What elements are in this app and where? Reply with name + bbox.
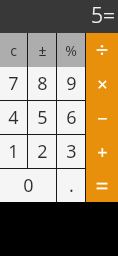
button[interactable]: 7 <box>0 67 27 100</box>
staticText: ± <box>38 41 47 60</box>
staticText: c <box>10 41 17 60</box>
button[interactable]: 0 <box>0 169 56 202</box>
button[interactable]: % <box>57 33 85 67</box>
staticText: × <box>97 72 108 97</box>
button[interactable]: Divide <box>86 33 118 67</box>
staticText: 3 <box>66 139 77 164</box>
button[interactable]: Multiply <box>86 67 118 101</box>
staticText: 9 <box>66 71 77 96</box>
staticText: 4 <box>8 105 19 130</box>
button[interactable]: 3 <box>57 135 85 168</box>
staticText: 5= <box>91 1 115 30</box>
button[interactable]: Subtract <box>86 101 118 135</box>
staticText: 5 <box>37 105 48 130</box>
button[interactable]: 5 <box>28 101 56 134</box>
staticText: − <box>97 106 108 131</box>
button[interactable]: c <box>0 33 27 67</box>
staticText: 2 <box>37 139 48 164</box>
staticText: 6 <box>66 105 77 130</box>
staticText: 8 <box>37 71 48 96</box>
button[interactable]: . <box>57 169 85 202</box>
button[interactable]: Add <box>86 135 118 169</box>
staticText: 1 <box>8 139 19 164</box>
staticText: 7 <box>8 71 19 96</box>
button[interactable]: 9 <box>57 67 85 100</box>
button[interactable]: 2 <box>28 135 56 168</box>
staticText: % <box>65 41 77 60</box>
button[interactable]: 6 <box>57 101 85 134</box>
button[interactable]: 8 <box>28 67 56 100</box>
button[interactable]: 1 <box>0 135 27 168</box>
button[interactable]: ± <box>28 33 56 67</box>
button[interactable]: Equals <box>86 169 118 202</box>
staticText: 0 <box>23 173 34 198</box>
button[interactable]: 4 <box>0 101 27 134</box>
staticText: . <box>69 173 74 198</box>
staticText: + <box>97 140 108 165</box>
